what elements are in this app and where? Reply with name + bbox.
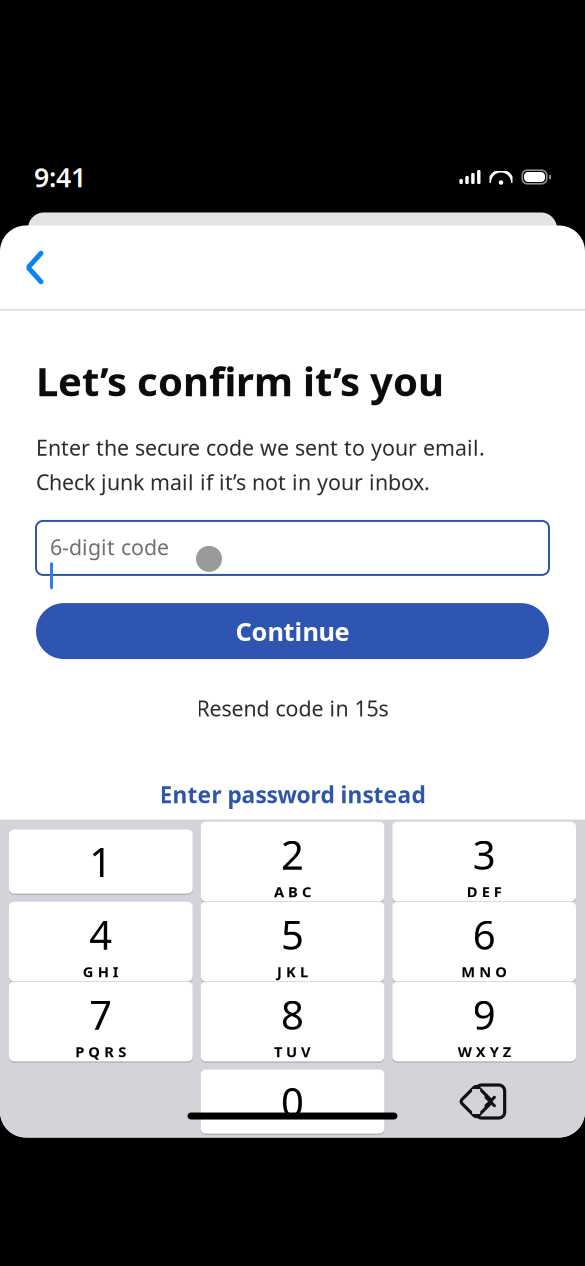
button[interactable]: 7 (9, 989, 193, 1053)
staticText: G H I (83, 962, 119, 981)
staticText: 2 (281, 828, 304, 881)
staticText: 0 (281, 1075, 304, 1128)
button[interactable]: 1 (9, 829, 193, 893)
button[interactable]: 6 (392, 909, 576, 973)
staticText: 8 (281, 988, 304, 1041)
button[interactable]: 9 (392, 989, 576, 1053)
staticText: Let’s confirm it’s you (36, 354, 444, 407)
staticText: 5 (281, 908, 304, 961)
button[interactable]: 3 (392, 829, 576, 893)
staticText: T U V (274, 1042, 311, 1061)
button[interactable]: Back (8, 240, 62, 294)
staticText: D E F (467, 882, 502, 901)
staticText: M N O (461, 962, 507, 981)
button[interactable]: 2 (201, 829, 384, 893)
button[interactable]: 8 (201, 989, 384, 1053)
staticText: P Q R S (75, 1042, 126, 1061)
staticText: 3 (473, 828, 496, 881)
button[interactable]: Delete (392, 1069, 576, 1133)
staticText: 4 (89, 908, 112, 961)
staticText: Resend code in 15s (196, 694, 388, 722)
staticText: Enter password instead (159, 779, 425, 809)
staticText: 7 (89, 988, 112, 1041)
button[interactable]: 5 (201, 909, 384, 973)
staticText: J K L (277, 962, 308, 981)
staticText: A B C (274, 882, 311, 901)
staticText: 9 (473, 988, 496, 1041)
staticText: Continue (235, 614, 349, 648)
button[interactable]: Continue (36, 603, 549, 659)
staticText: Enter the secure code we sent to your em… (36, 433, 485, 496)
staticText: 6 (473, 908, 496, 961)
staticText: W X Y Z (458, 1042, 511, 1061)
button[interactable]: 4 (9, 909, 193, 973)
staticText: 9:41 (34, 159, 86, 195)
button[interactable]: 6-digit code (36, 528, 549, 582)
button[interactable]: Enter password instead (36, 769, 549, 819)
staticText: 6-digit code (50, 533, 169, 561)
staticText: 1 (89, 835, 112, 888)
button[interactable]: 0 (201, 1069, 384, 1133)
